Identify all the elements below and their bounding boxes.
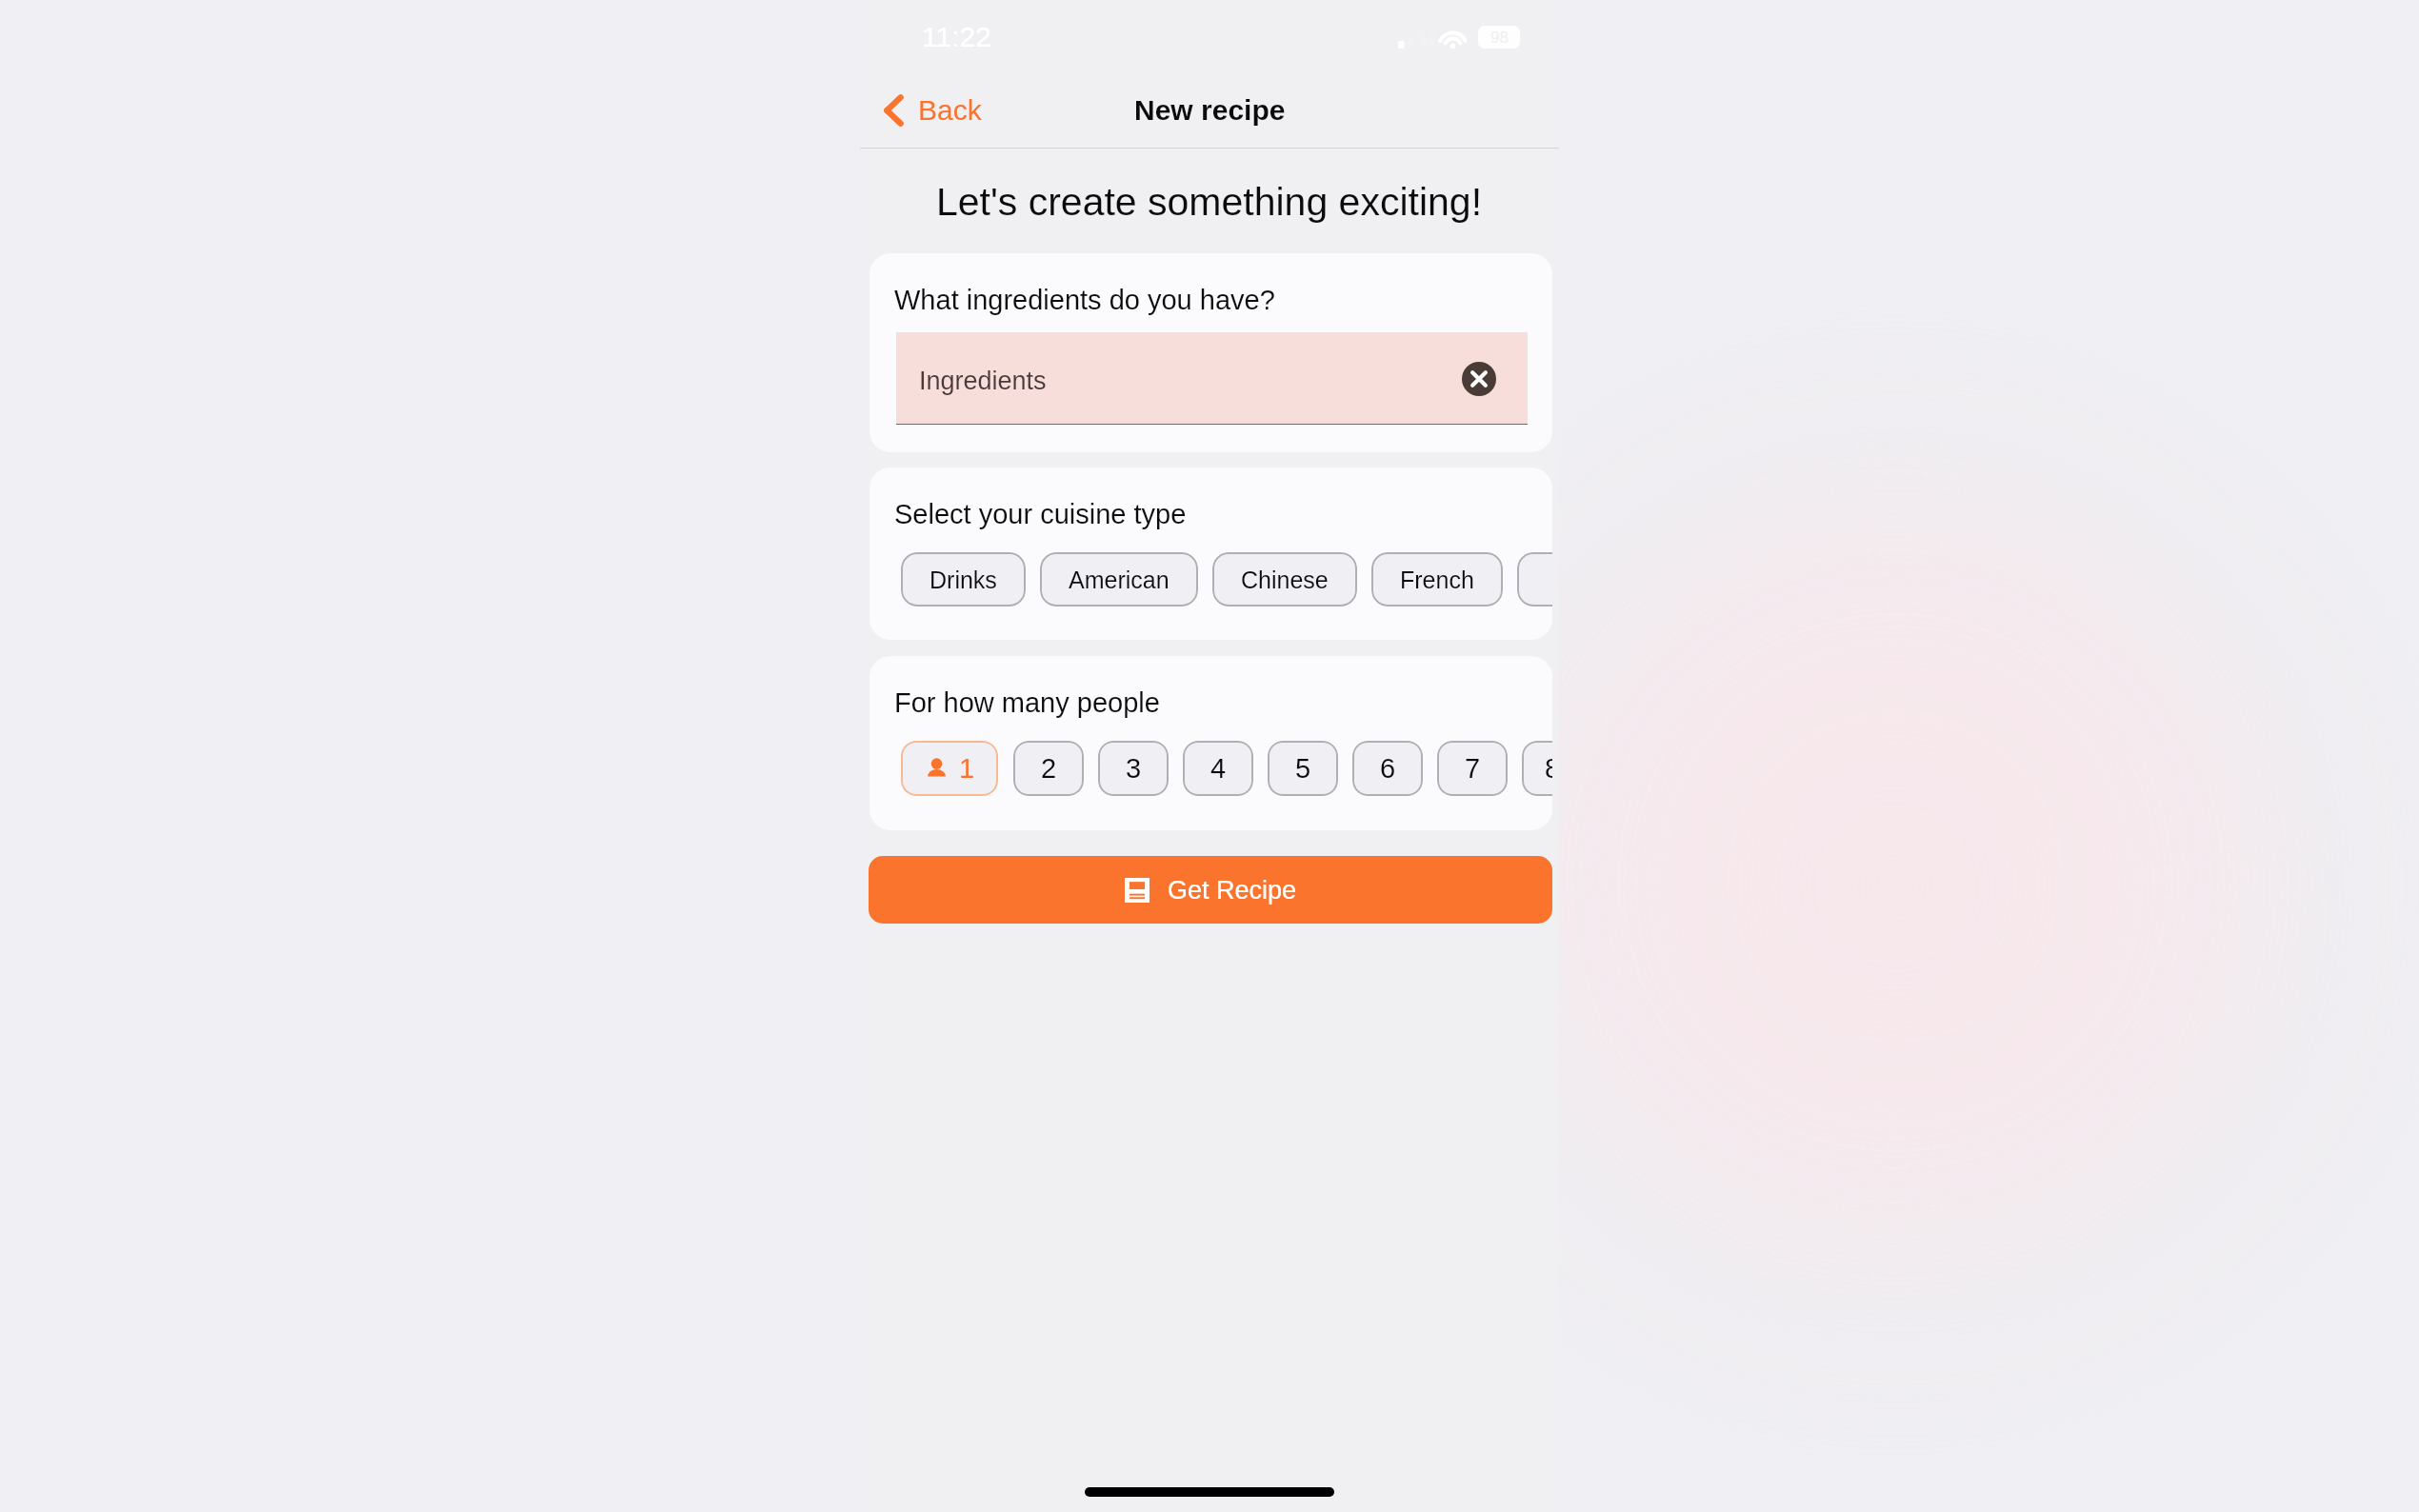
button[interactable]: American — [1040, 552, 1198, 607]
staticText: 4 — [1210, 753, 1227, 784]
button[interactable]: 8 — [1522, 741, 1552, 796]
staticText: 11:22 — [922, 21, 991, 53]
staticText: 8 — [1545, 753, 1552, 784]
button[interactable]: 2 — [1013, 741, 1084, 796]
button[interactable]: 4 — [1183, 741, 1253, 796]
button[interactable]: 7 — [1437, 741, 1508, 796]
staticText: Chinese — [1241, 567, 1329, 593]
staticText: Drinks — [930, 567, 997, 593]
staticText: Ingredients — [919, 367, 1047, 395]
button[interactable]: Drinks — [901, 552, 1026, 607]
staticText: 6 — [1380, 753, 1396, 784]
button[interactable]: 6 — [1352, 741, 1423, 796]
staticText: 3 — [1126, 753, 1142, 784]
staticText: 7 — [1465, 753, 1481, 784]
button[interactable]: Chinese — [1212, 552, 1357, 607]
staticText: 98 — [1490, 29, 1509, 47]
staticText: American — [1069, 567, 1170, 593]
button[interactable]: Get Recipe — [869, 856, 1552, 924]
button[interactable]: 1 — [901, 741, 998, 796]
staticText: Select your cuisine type — [894, 499, 1187, 529]
staticText: 2 — [1041, 753, 1057, 784]
staticText: What ingredients do you have? — [894, 285, 1275, 315]
button[interactable]: 3 — [1098, 741, 1169, 796]
button[interactable]: Clear text — [1462, 362, 1496, 396]
staticText: Back — [918, 94, 982, 127]
staticText: For how many people — [894, 687, 1160, 718]
button[interactable]: French — [1371, 552, 1503, 607]
staticText: 1 — [959, 753, 975, 784]
staticText: 5 — [1295, 753, 1311, 784]
staticText: Get Recipe — [1168, 876, 1297, 905]
button[interactable]: Indian — [1517, 552, 1552, 607]
button[interactable]: 5 — [1268, 741, 1338, 796]
staticText: Let's create something exciting! — [936, 180, 1483, 224]
staticText: French — [1400, 567, 1474, 593]
staticText: New recipe — [1134, 94, 1286, 127]
button[interactable]: Back — [870, 82, 993, 139]
